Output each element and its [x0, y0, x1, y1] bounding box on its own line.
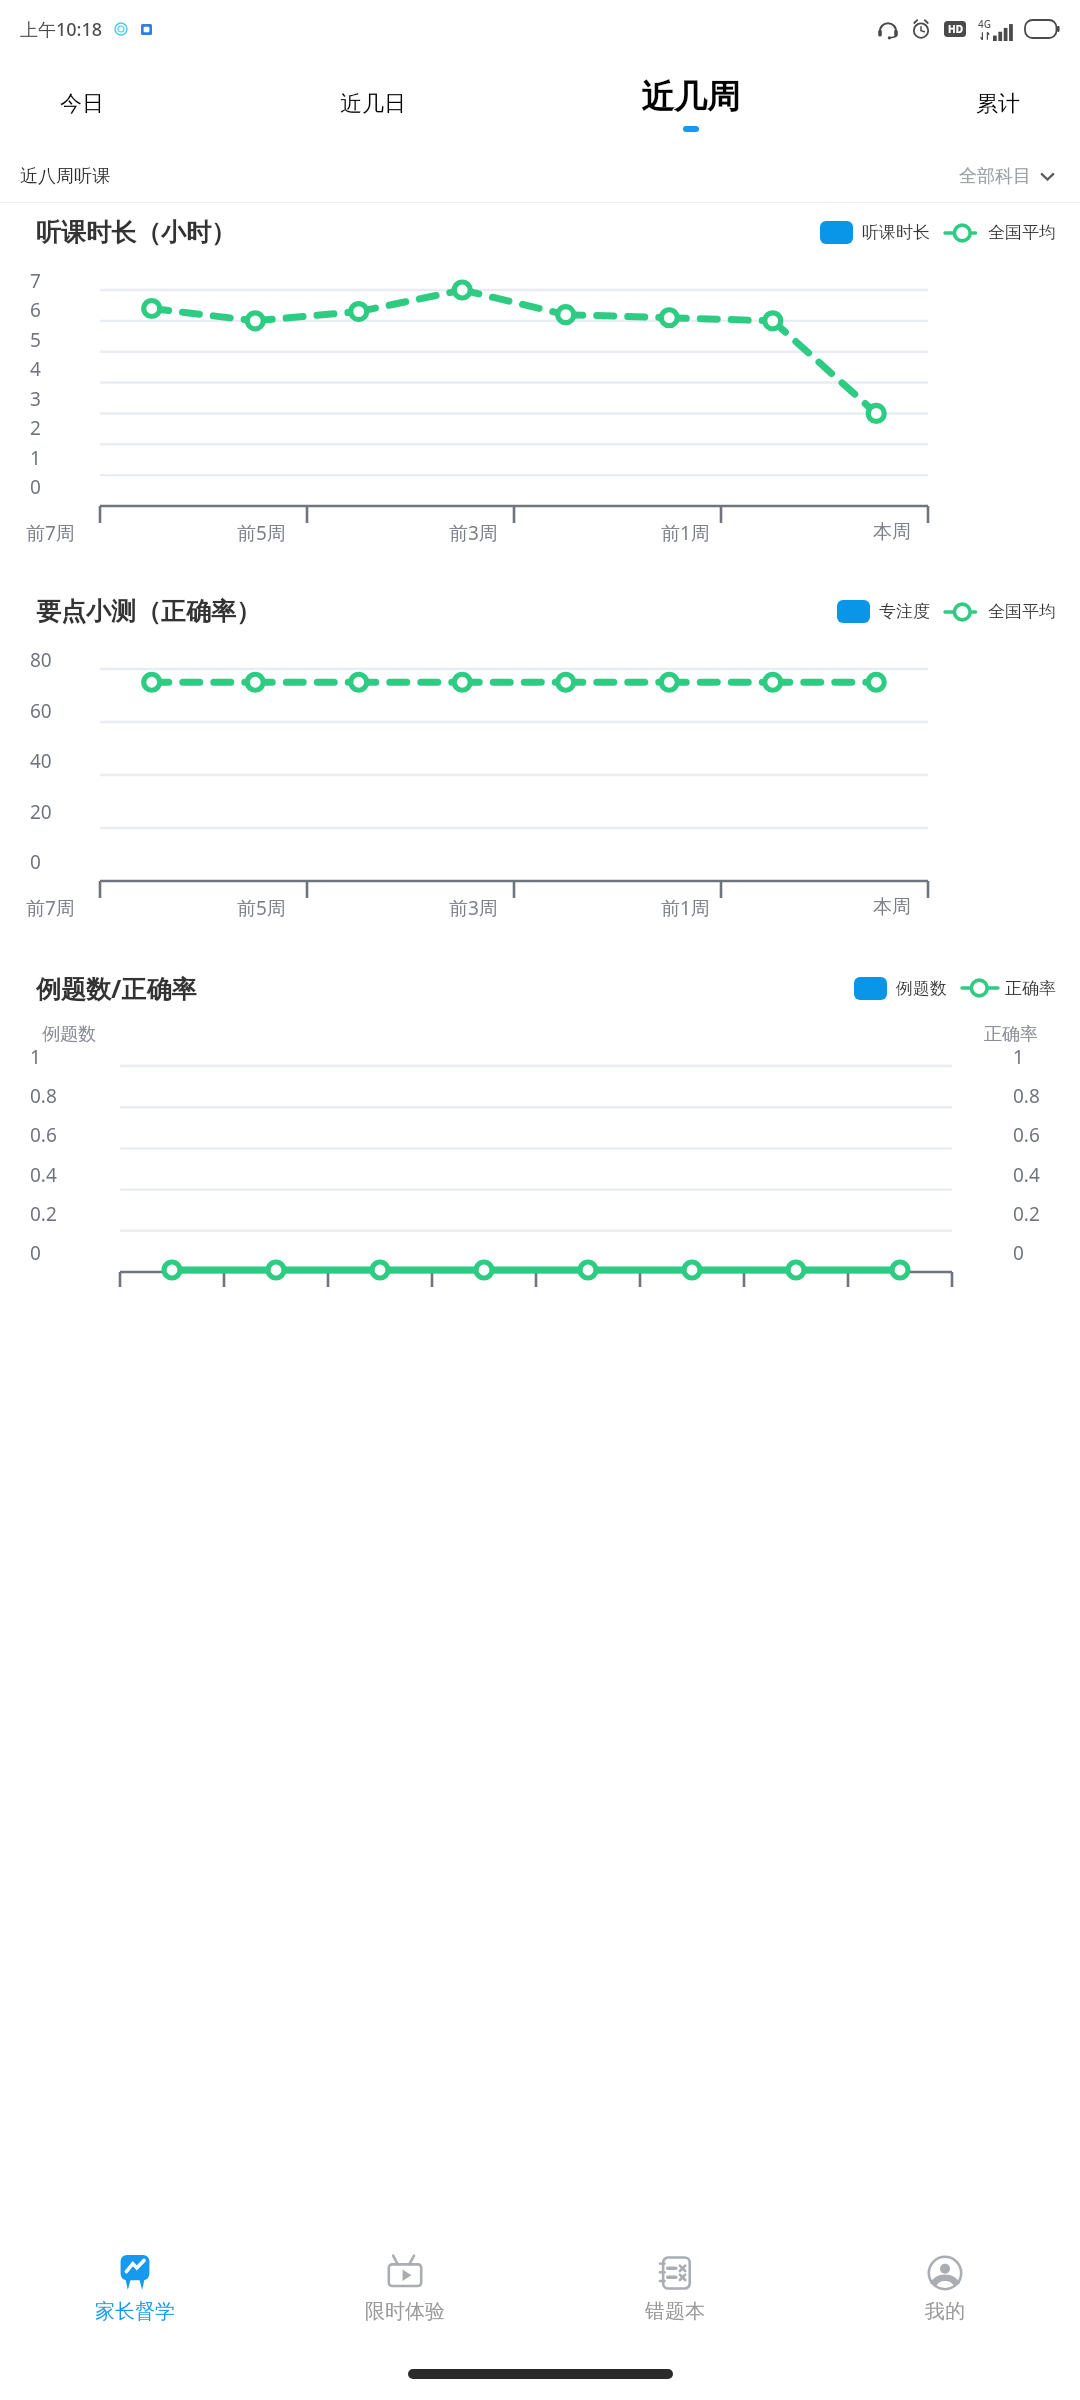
staticText: 20 [30, 799, 52, 825]
staticText: 0.8 [30, 1083, 57, 1109]
staticText: 全国平均 [988, 222, 1056, 243]
staticText: 0.2 [1013, 1201, 1040, 1227]
staticText: 今日 [60, 90, 104, 118]
staticText: 本周 [873, 520, 911, 544]
staticText: 0 [30, 474, 41, 500]
staticText: 前1周 [661, 895, 710, 921]
staticText: 0.6 [1013, 1122, 1040, 1148]
other: 错题本 [657, 2255, 693, 2291]
button[interactable]: 我的 [810, 2230, 1080, 2348]
staticText: 例题数 [896, 978, 947, 999]
staticText: 4G [978, 17, 991, 31]
staticText: 错题本 [645, 2299, 705, 2324]
staticText: 1 [30, 445, 41, 471]
staticText: 前1周 [661, 520, 710, 546]
staticText: 0 [30, 849, 41, 875]
staticText: 专注度 [879, 601, 930, 622]
staticText: 0.4 [1013, 1162, 1040, 1188]
staticText: 前7周 [26, 895, 75, 921]
staticText: 听课时长 [862, 222, 930, 243]
other: 我的 [927, 2255, 963, 2291]
staticText: 前7周 [26, 520, 75, 546]
staticText: 我的 [925, 2299, 965, 2324]
staticText: 40 [30, 748, 52, 774]
button[interactable]: 累计 [966, 84, 1030, 124]
button[interactable]: 今日 [50, 84, 114, 124]
staticText: 全国平均 [988, 601, 1056, 622]
staticText: 3 [30, 386, 41, 412]
staticText: 要点小测（正确率） [36, 596, 261, 627]
staticText: 6 [30, 297, 41, 323]
staticText: 0.2 [30, 1201, 57, 1227]
staticText: 0.4 [30, 1162, 57, 1188]
staticText: 听课时长（小时） [36, 217, 236, 248]
staticText: 近几周 [641, 76, 740, 118]
staticText: 前5周 [237, 520, 286, 546]
button[interactable]: 家长督学 [0, 2230, 270, 2348]
button[interactable]: 近几周 [631, 70, 750, 138]
button[interactable]: 错题本 [540, 2230, 810, 2348]
staticText: 近几日 [340, 90, 406, 118]
staticText: 前5周 [237, 895, 286, 921]
staticText: 0.6 [30, 1122, 57, 1148]
button[interactable]: 近几日 [330, 84, 416, 124]
staticText: HD [948, 22, 963, 36]
staticText: 1 [1013, 1044, 1024, 1070]
staticText: 0 [30, 1240, 41, 1266]
staticText: 0.8 [1013, 1083, 1040, 1109]
staticText: 上午10:18 [20, 17, 103, 42]
staticText: 0 [1013, 1240, 1024, 1266]
staticText: 正确率 [1005, 978, 1056, 999]
staticText: 限时体验 [365, 2299, 445, 2324]
button[interactable]: 全部科目 [954, 160, 1060, 193]
other: 家长督学 [117, 2255, 153, 2291]
staticText: 7 [30, 268, 41, 294]
staticText: 前3周 [449, 895, 498, 921]
staticText: 80 [30, 647, 52, 673]
staticText: 5 [30, 327, 41, 353]
staticText: 本周 [873, 895, 911, 919]
staticText: 60 [30, 698, 52, 724]
staticText: 家长督学 [95, 2299, 175, 2324]
staticText: 4 [30, 356, 41, 382]
staticText: 1 [30, 1044, 41, 1070]
staticText: 2 [30, 415, 41, 441]
staticText: 前3周 [449, 520, 498, 546]
other: 限时体验 [387, 2255, 423, 2291]
staticText: 全部科目 [959, 165, 1031, 188]
staticText: 例题数 [42, 1023, 96, 1046]
staticText: 例题数/正确率 [36, 971, 197, 1005]
button[interactable]: 限时体验 [270, 2230, 540, 2348]
staticText: 近八周听课 [20, 165, 110, 188]
staticText: 正确率 [984, 1023, 1038, 1046]
staticText: 累计 [976, 90, 1020, 118]
